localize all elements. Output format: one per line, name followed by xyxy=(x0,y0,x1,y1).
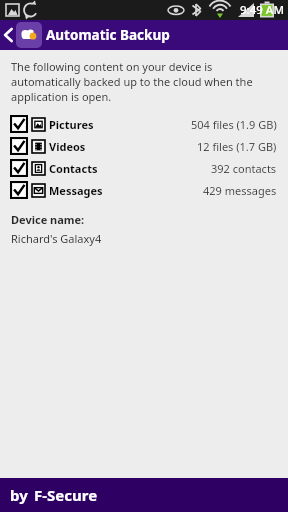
button[interactable]: Messages xyxy=(11,179,277,201)
staticText: The following content on your device is … xyxy=(11,59,277,104)
staticText: 12 files (1.7 GB) xyxy=(197,139,277,154)
staticText: Messages xyxy=(49,183,103,198)
button[interactable]: Videos xyxy=(11,135,277,157)
staticText: 504 files (1.9 GB) xyxy=(191,117,277,132)
button[interactable]: by xyxy=(0,478,288,512)
staticText: Videos xyxy=(49,139,86,154)
staticText: Contacts xyxy=(49,161,98,176)
staticText: Pictures xyxy=(49,117,94,132)
staticText: Device name: xyxy=(11,212,85,227)
button[interactable]: Pictures xyxy=(11,113,277,135)
button[interactable]: Back xyxy=(0,20,46,50)
staticText: 429 messages xyxy=(203,183,277,198)
staticText: Richard's Galaxy4 xyxy=(11,231,102,246)
staticText: F-Secure xyxy=(34,485,98,505)
staticText: 9:49 AM xyxy=(240,2,284,18)
staticText: by xyxy=(10,485,28,505)
staticText: Automatic Backup xyxy=(46,26,170,44)
button[interactable]: Contacts xyxy=(11,157,277,179)
staticText: 392 contacts xyxy=(211,161,277,176)
